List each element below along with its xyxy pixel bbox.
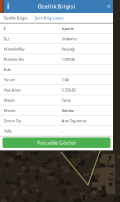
staticText: 5.333,82 bbox=[61, 87, 75, 92]
button[interactable]: Parselde Göster bbox=[2, 137, 110, 148]
staticText: Mahalle/Köy bbox=[3, 46, 24, 51]
staticText: İnsiçağı bbox=[61, 46, 74, 51]
button[interactable]: Kapat bbox=[104, 0, 113, 13]
staticText: Zemin Tip bbox=[3, 118, 20, 123]
staticText: Mahalle No bbox=[3, 56, 23, 62]
staticText: 1.04 bbox=[61, 77, 68, 82]
staticText: ✕ bbox=[106, 3, 110, 10]
staticText: Kalınlar bbox=[61, 108, 74, 113]
staticText: Pafta bbox=[3, 128, 11, 133]
staticText: Yapı Alanı bbox=[3, 87, 20, 92]
staticText: Ada bbox=[3, 67, 10, 72]
staticText: Mevkii bbox=[3, 108, 15, 113]
staticText: Şerh Bilgi Listesi bbox=[34, 15, 63, 21]
staticText: 1.09104 bbox=[61, 56, 74, 62]
staticText: Nitelik bbox=[3, 97, 14, 103]
staticText: İl bbox=[3, 26, 5, 31]
staticText: Tarla bbox=[61, 97, 70, 103]
staticText: Isparta bbox=[61, 26, 73, 31]
staticText: İlçe bbox=[3, 36, 9, 41]
button[interactable]: Şerh Bilgi Listesi bbox=[31, 13, 66, 23]
staticText: Özellik Bilgisi bbox=[37, 3, 75, 10]
button[interactable]: Bilgi bbox=[0, 0, 13, 13]
staticText: Ana Taşınmaz bbox=[61, 118, 86, 123]
staticText: Parselde Göster bbox=[37, 139, 76, 146]
staticText: Uluborlu bbox=[61, 36, 76, 41]
staticText: Özellik Bilgisi bbox=[3, 15, 27, 21]
staticText: Parsel bbox=[3, 77, 14, 82]
button[interactable]: Özellik Bilgisi bbox=[0, 13, 31, 23]
